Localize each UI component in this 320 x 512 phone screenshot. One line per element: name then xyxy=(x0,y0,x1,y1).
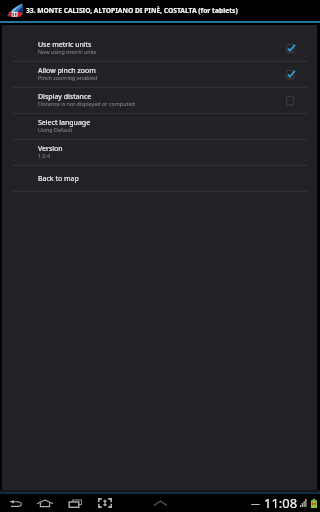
button[interactable]: Back to map xyxy=(0,166,320,192)
staticText: Allow pinch zoom xyxy=(38,66,96,76)
button[interactable]: Enabled checkbox xyxy=(286,43,300,55)
button[interactable]: Recent apps xyxy=(63,494,87,512)
button[interactable]: Home xyxy=(33,494,57,512)
staticText: — xyxy=(251,497,261,509)
button[interactable]: Enabled checkbox xyxy=(286,69,300,81)
button[interactable]: Select language xyxy=(0,114,320,140)
staticText: 1.0.4 xyxy=(38,152,51,159)
staticText: Use metric units xyxy=(38,40,92,50)
staticText: Select language xyxy=(38,118,91,128)
button[interactable]: 33. MONTE CALISIO, ALTOPIANO DI PINÈ, CO… xyxy=(0,0,320,21)
button[interactable]: Show navigation bar xyxy=(148,494,172,512)
staticText: Back to map xyxy=(38,174,79,184)
staticText: Now using metric units xyxy=(38,48,97,55)
staticText: Version xyxy=(38,144,63,154)
staticText: Pinch zooming enabled xyxy=(38,74,98,81)
button[interactable]: Screenshot xyxy=(93,494,117,512)
button[interactable]: Back xyxy=(4,494,28,512)
button[interactable]: Use metric units xyxy=(0,36,320,62)
staticText: Display distance xyxy=(38,92,92,102)
button[interactable]: Allow pinch zoom xyxy=(0,62,320,88)
staticText: 33. MONTE CALISIO, ALTOPIANO DI PINÈ, CO… xyxy=(26,6,238,15)
button[interactable]: Display distance xyxy=(0,88,320,114)
button[interactable]: Version xyxy=(0,140,320,166)
staticText: Distance is not displayed or computed xyxy=(38,100,135,107)
button[interactable]: Disabled checkbox xyxy=(286,95,300,107)
staticText: 11:08 xyxy=(264,494,298,512)
staticText: Using Default xyxy=(38,126,73,133)
